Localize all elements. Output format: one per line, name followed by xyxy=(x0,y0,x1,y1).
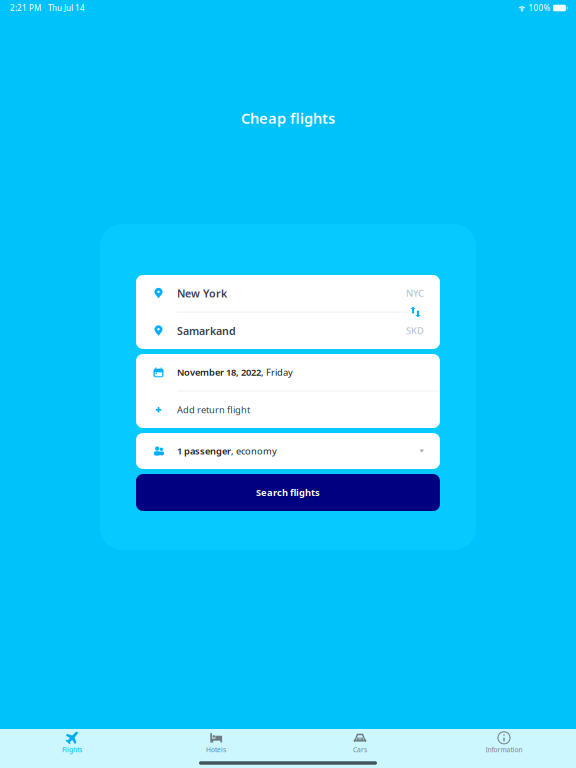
staticText: Flights xyxy=(62,745,82,754)
staticText: Hotels xyxy=(206,745,226,754)
staticText: SKD xyxy=(406,325,424,337)
staticText: Thu Jul 14 xyxy=(48,3,85,13)
staticText: Search flights xyxy=(256,486,320,499)
button[interactable]: Hotels xyxy=(144,731,288,755)
staticText: 100% xyxy=(528,3,550,13)
button[interactable]: Information xyxy=(432,731,576,755)
staticText: Samarkand xyxy=(177,324,236,338)
button[interactable]: November 18, 2022, Friday xyxy=(136,354,440,390)
staticText: Add return flight xyxy=(177,404,250,416)
button[interactable]: Add return flight xyxy=(136,391,440,428)
staticText: 2:21 PM xyxy=(10,3,41,13)
button[interactable]: Cars xyxy=(288,731,432,755)
button[interactable]: Samarkand xyxy=(136,312,440,349)
staticText: New York xyxy=(177,286,227,300)
staticText: 1 passenger, economy xyxy=(177,445,277,457)
button[interactable]: New York xyxy=(136,275,440,311)
staticText: Cars xyxy=(353,745,367,754)
button[interactable]: Flights xyxy=(0,731,144,755)
button[interactable]: Search flights xyxy=(136,474,440,511)
staticText: November 18, 2022, Friday xyxy=(177,366,293,378)
button[interactable]: 1 passenger, economy xyxy=(136,433,440,469)
staticText: NYC xyxy=(406,287,424,299)
staticText: Cheap flights xyxy=(241,108,335,128)
staticText: Information xyxy=(485,745,522,754)
